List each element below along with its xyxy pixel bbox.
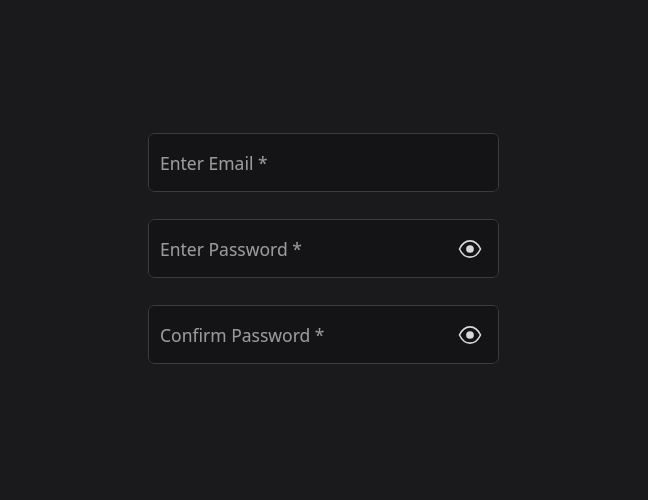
button[interactable]: Confirm Password *	[148, 305, 499, 364]
staticText: Enter Email *	[160, 151, 268, 175]
staticText: Confirm Password *	[160, 323, 325, 347]
button[interactable]: Show password	[456, 235, 484, 263]
staticText: Enter Password *	[160, 237, 302, 261]
button[interactable]: Show confirm password	[456, 321, 484, 349]
button[interactable]: Enter Password *	[148, 219, 499, 278]
button[interactable]: Enter Email *	[148, 133, 499, 192]
